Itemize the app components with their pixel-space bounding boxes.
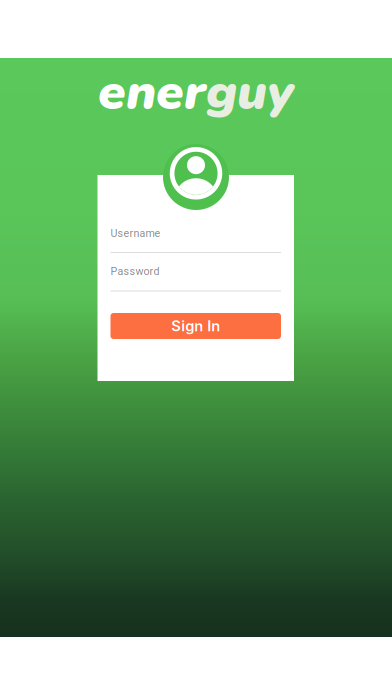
staticText: Username [110, 227, 160, 239]
staticText: Sign In [171, 317, 220, 335]
staticText: ener [98, 58, 206, 126]
button[interactable]: Sign In [110, 313, 281, 339]
staticText: Password [110, 265, 159, 277]
staticText: guy [206, 58, 294, 126]
